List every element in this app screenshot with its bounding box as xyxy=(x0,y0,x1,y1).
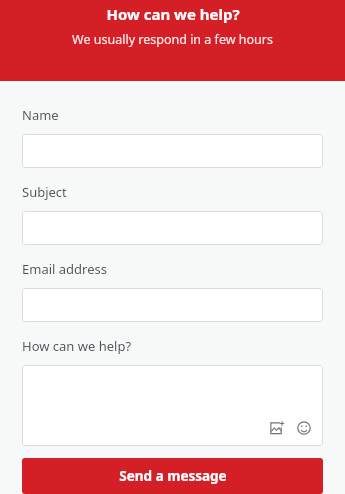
staticText: Send a message xyxy=(119,467,227,485)
button[interactable]: Attach image xyxy=(267,418,287,438)
button[interactable] xyxy=(22,134,323,168)
staticText: We usually respond in a few hours xyxy=(72,31,273,48)
button[interactable]: Attach image xyxy=(22,365,323,446)
button[interactable]: Send a message xyxy=(22,458,323,494)
button[interactable]: Insert emoji xyxy=(294,418,314,438)
button[interactable] xyxy=(22,288,323,322)
staticText: How can we help? xyxy=(106,4,240,24)
staticText: Email address xyxy=(22,260,107,278)
staticText: Subject xyxy=(22,183,67,201)
staticText: How can we help? xyxy=(22,337,132,355)
button[interactable] xyxy=(22,211,323,245)
staticText: Name xyxy=(22,106,59,124)
